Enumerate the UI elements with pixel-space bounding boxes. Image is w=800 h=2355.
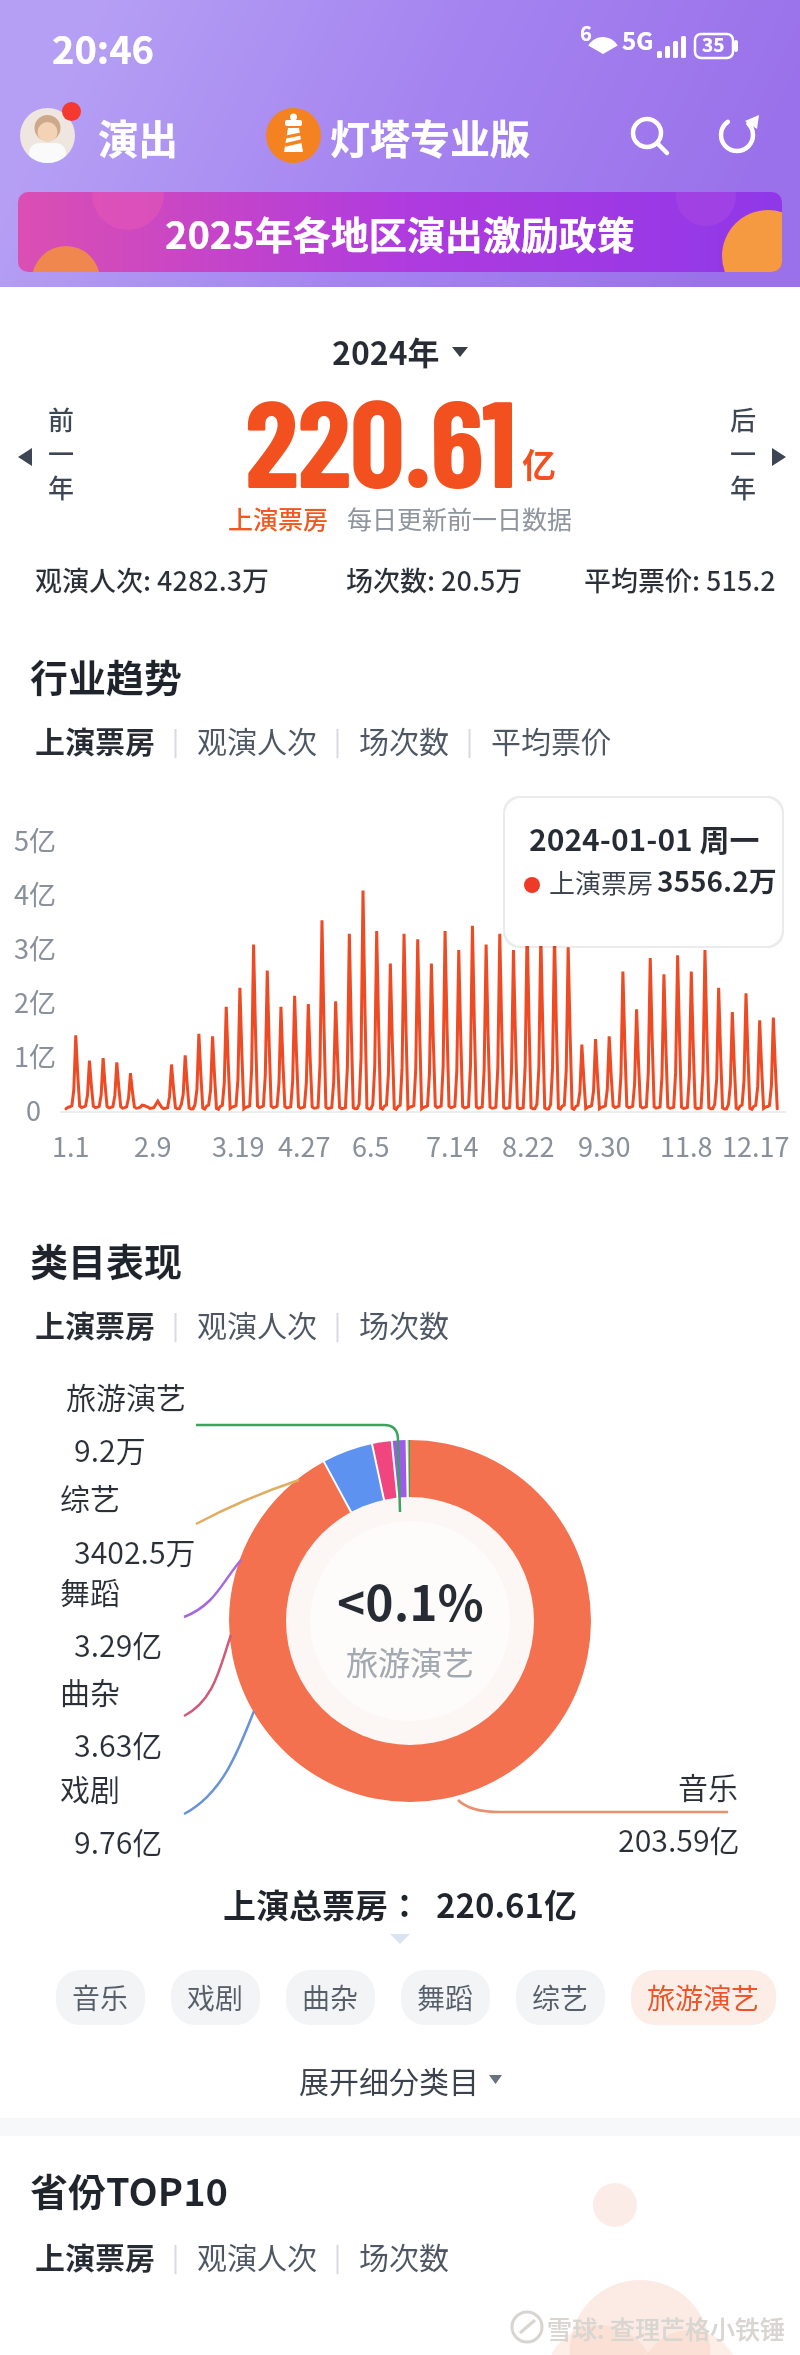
staticText: 音乐 [72, 1977, 129, 2018]
staticText: | [172, 721, 180, 759]
staticText: 20:46 [52, 20, 155, 75]
staticText: 3.19 [212, 1126, 265, 1165]
staticText: 11.8 [660, 1126, 713, 1165]
staticText: 行业趋势 [30, 648, 183, 703]
button[interactable]: 场次数 [359, 1302, 449, 1345]
button[interactable]: 观演人次 [197, 2234, 317, 2277]
button[interactable]: 音乐 [56, 1970, 145, 2025]
button[interactable]: 曲杂 [286, 1970, 375, 2025]
staticText: | [466, 721, 474, 759]
staticText: 曲杂 [60, 1669, 120, 1712]
staticText: 7.14 [426, 1126, 479, 1165]
staticText: 类目表现 [30, 1232, 183, 1287]
button[interactable]: 后 一 年 [716, 400, 796, 530]
staticText: 综艺 [60, 1475, 120, 1518]
staticText: 每日更新前一日数据 [347, 500, 573, 536]
staticText: 场次数: 20.5万 [346, 560, 523, 599]
staticText: 雪球: 查理芒格小铁锤 [547, 2310, 786, 2346]
staticText: 亿 [522, 439, 556, 488]
staticText: 展开细分类目 [299, 2058, 479, 2101]
staticText: 3402.5万 [74, 1529, 196, 1572]
staticText: 6.5 [352, 1126, 390, 1165]
staticText: 1.1 [52, 1126, 90, 1165]
staticText: 旅游演艺 [66, 1374, 186, 1417]
button[interactable] [20, 108, 75, 163]
staticText: 1亿 [14, 1036, 56, 1075]
button[interactable]: 上演票房 [35, 1302, 155, 1345]
staticText: 上演票房 [228, 500, 329, 536]
staticText: 12.17 [722, 1126, 790, 1165]
button[interactable] [626, 112, 674, 160]
staticText: 舞蹈 [417, 1977, 474, 2018]
button[interactable]: 2024年 [332, 328, 468, 374]
staticText: 后 一 年 [730, 400, 757, 506]
button[interactable]: 舞蹈 [401, 1970, 490, 2025]
staticText: 平均票价: 515.2 [584, 560, 776, 599]
staticText: 203.59亿 [618, 1817, 740, 1860]
button[interactable]: 场次数 [359, 2234, 449, 2277]
button[interactable]: 综艺 [516, 1970, 605, 2025]
button[interactable]: 观演人次 [197, 1302, 317, 1345]
staticText: 上演票房 [549, 863, 654, 901]
staticText: | [334, 1305, 342, 1343]
staticText: <0.1% [337, 1565, 484, 1635]
staticText: 灯塔专业版 [330, 108, 530, 166]
staticText: 9.30 [578, 1126, 631, 1165]
button[interactable]: 观演人次 [197, 718, 317, 761]
button[interactable] [712, 110, 762, 160]
staticText: 35 [702, 30, 725, 58]
button[interactable]: 上演票房 [35, 718, 155, 761]
staticText: 2.9 [134, 1126, 172, 1165]
staticText: | [172, 1305, 180, 1343]
staticText: 0 [26, 1090, 41, 1129]
button[interactable]: 平均票价 [491, 718, 611, 761]
staticText: 220.61 [245, 366, 516, 512]
staticText: 9.2万 [74, 1427, 146, 1470]
staticText: 8.22 [502, 1126, 555, 1165]
button[interactable] [266, 108, 321, 163]
staticText: 2025年各地区演出激励政策 [165, 205, 635, 260]
staticText: 9.76亿 [74, 1819, 163, 1862]
staticText: 综艺 [532, 1977, 589, 2018]
staticText: 2亿 [14, 982, 56, 1021]
staticText: 6 [580, 18, 592, 47]
staticText: 曲杂 [302, 1977, 359, 2018]
staticText: 旅游演艺 [647, 1977, 760, 2018]
staticText: 5亿 [14, 820, 56, 859]
staticText: 5G [622, 22, 654, 57]
button[interactable]: 场次数 [359, 718, 449, 761]
staticText: 4.27 [278, 1126, 331, 1165]
staticText: 音乐 [678, 1764, 738, 1807]
staticText: 前 一 年 [48, 400, 75, 506]
staticText: 演出 [98, 108, 178, 166]
button[interactable]: 戏剧 [171, 1970, 260, 2025]
staticText: | [172, 2237, 180, 2275]
staticText: 上演总票房： 220.61亿 [223, 1880, 578, 1928]
staticText: 旅游演艺 [346, 1638, 475, 1684]
staticText: 舞蹈 [60, 1569, 120, 1612]
staticText: 3.63亿 [74, 1722, 163, 1765]
staticText: 2024-01-01 周一 [529, 816, 760, 859]
staticText: 省份TOP10 [30, 2162, 229, 2217]
staticText: 戏剧 [60, 1766, 120, 1809]
staticText: 3亿 [14, 928, 56, 967]
button[interactable]: 展开细分类目 [299, 2058, 502, 2101]
staticText: 戏剧 [187, 1977, 244, 2018]
button[interactable]: 旅游演艺 [631, 1970, 776, 2025]
button[interactable]: 前 一 年 [10, 400, 90, 530]
staticText: | [334, 2237, 342, 2275]
staticText: | [334, 721, 342, 759]
button[interactable]: 2025年各地区演出激励政策 [18, 192, 782, 272]
staticText: 3.29亿 [74, 1622, 163, 1665]
staticText: 2024年 [332, 328, 440, 374]
staticText: 观演人次: 4282.3万 [35, 560, 270, 599]
button[interactable]: 上演票房 [35, 2234, 155, 2277]
staticText: 3556.2万 [657, 860, 777, 901]
staticText: 4亿 [14, 874, 56, 913]
